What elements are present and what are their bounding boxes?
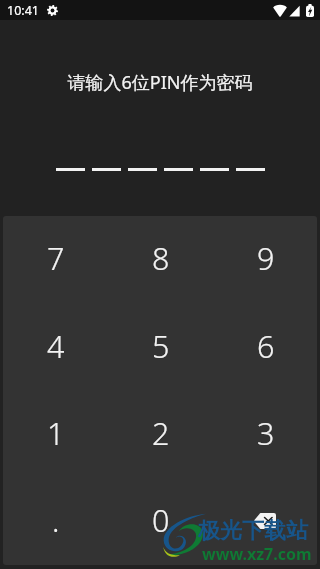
button[interactable]: 2 [107, 391, 212, 478]
staticText: 请输入6位PIN作为密码 [0, 70, 320, 95]
staticText: 10:41 [7, 2, 39, 19]
button[interactable]: 3 [212, 391, 317, 478]
button[interactable]: 5 [107, 304, 212, 391]
staticText: 0 [152, 499, 170, 541]
staticText: 8 [152, 237, 170, 279]
button[interactable]: 6 [212, 304, 317, 391]
staticText: 4 [47, 325, 65, 367]
button[interactable]: 1 [3, 391, 107, 478]
button[interactable]: 7 [3, 216, 107, 304]
staticText: 5 [152, 325, 170, 367]
button[interactable]: Settings [45, 3, 59, 17]
staticText: 1 [47, 412, 65, 454]
button[interactable]: 8 [107, 216, 212, 304]
staticText: . [52, 499, 60, 541]
button[interactable]: 9 [212, 216, 317, 304]
button[interactable]: Backspace [212, 478, 317, 565]
staticText: www.xz7.com [202, 543, 312, 565]
button[interactable]: . [3, 478, 107, 565]
staticText: 7 [47, 237, 65, 279]
staticText: 极光下载站 [198, 517, 308, 545]
staticText: 3 [257, 412, 275, 454]
button[interactable]: 4 [3, 304, 107, 391]
staticText: 6 [257, 325, 275, 367]
staticText: 2 [152, 412, 170, 454]
button[interactable]: 0 [107, 478, 212, 565]
staticText: 9 [257, 237, 275, 279]
